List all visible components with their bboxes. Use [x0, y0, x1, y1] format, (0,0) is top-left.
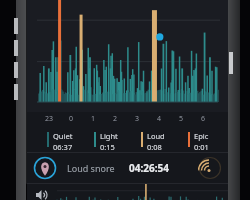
staticText: 0:01	[194, 142, 209, 152]
staticText: 23	[42, 114, 56, 124]
button[interactable]: Light	[94, 131, 141, 152]
button[interactable]: Volume	[33, 187, 51, 200]
staticText: 2	[108, 114, 122, 124]
button[interactable]: Loud	[141, 131, 188, 152]
staticText: Quiet	[53, 131, 73, 141]
staticText: 04:26:54	[129, 161, 169, 175]
button[interactable]: Epic	[188, 131, 228, 152]
staticText: Light	[100, 131, 118, 141]
staticText: 4	[152, 114, 166, 124]
staticText: 3	[130, 114, 144, 124]
staticText: Loud snore	[67, 162, 115, 174]
button[interactable]: Quiet	[47, 131, 94, 152]
staticText: 0:15	[100, 142, 115, 152]
staticText: 6	[196, 114, 210, 124]
staticText: 0	[64, 114, 78, 124]
button[interactable]: Snore detection	[198, 156, 222, 180]
staticText: Loud	[147, 131, 165, 141]
button[interactable]: Bookmark position	[33, 156, 57, 180]
staticText: 5	[174, 114, 188, 124]
staticText: 0:08	[147, 142, 162, 152]
staticText: 06:37	[53, 142, 73, 152]
staticText: Epic	[194, 131, 209, 141]
staticText: 1	[86, 114, 100, 124]
